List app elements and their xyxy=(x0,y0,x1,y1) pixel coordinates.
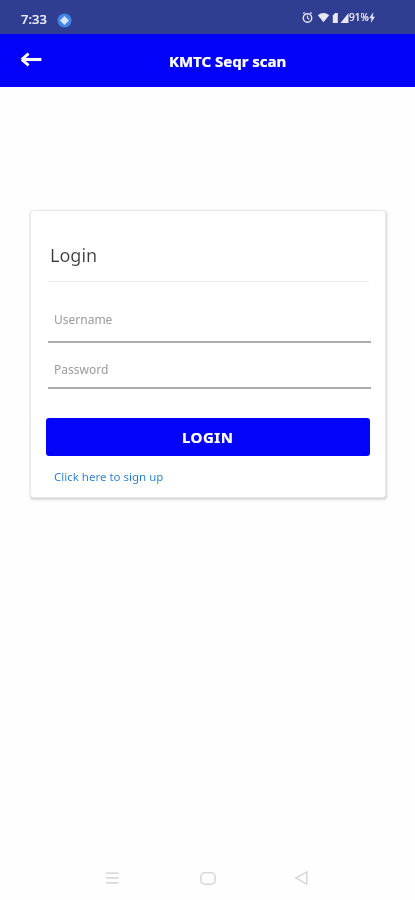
staticText: 91% xyxy=(349,10,369,24)
button[interactable] xyxy=(279,856,323,900)
button[interactable] xyxy=(90,856,134,900)
button[interactable] xyxy=(186,856,230,900)
button[interactable]: Password xyxy=(48,361,371,389)
staticText: KMTC Seqr scan xyxy=(169,51,287,71)
staticText: LOGIN xyxy=(182,427,234,447)
staticText: 7:33 xyxy=(21,10,47,28)
button[interactable]: Username xyxy=(48,311,371,343)
staticText: Username xyxy=(54,311,113,327)
staticText: Password xyxy=(54,361,109,377)
button[interactable] xyxy=(0,34,56,87)
staticText: Login xyxy=(50,243,98,268)
button[interactable]: LOGIN xyxy=(46,418,370,456)
button[interactable]: Click here to sign up xyxy=(54,469,164,485)
